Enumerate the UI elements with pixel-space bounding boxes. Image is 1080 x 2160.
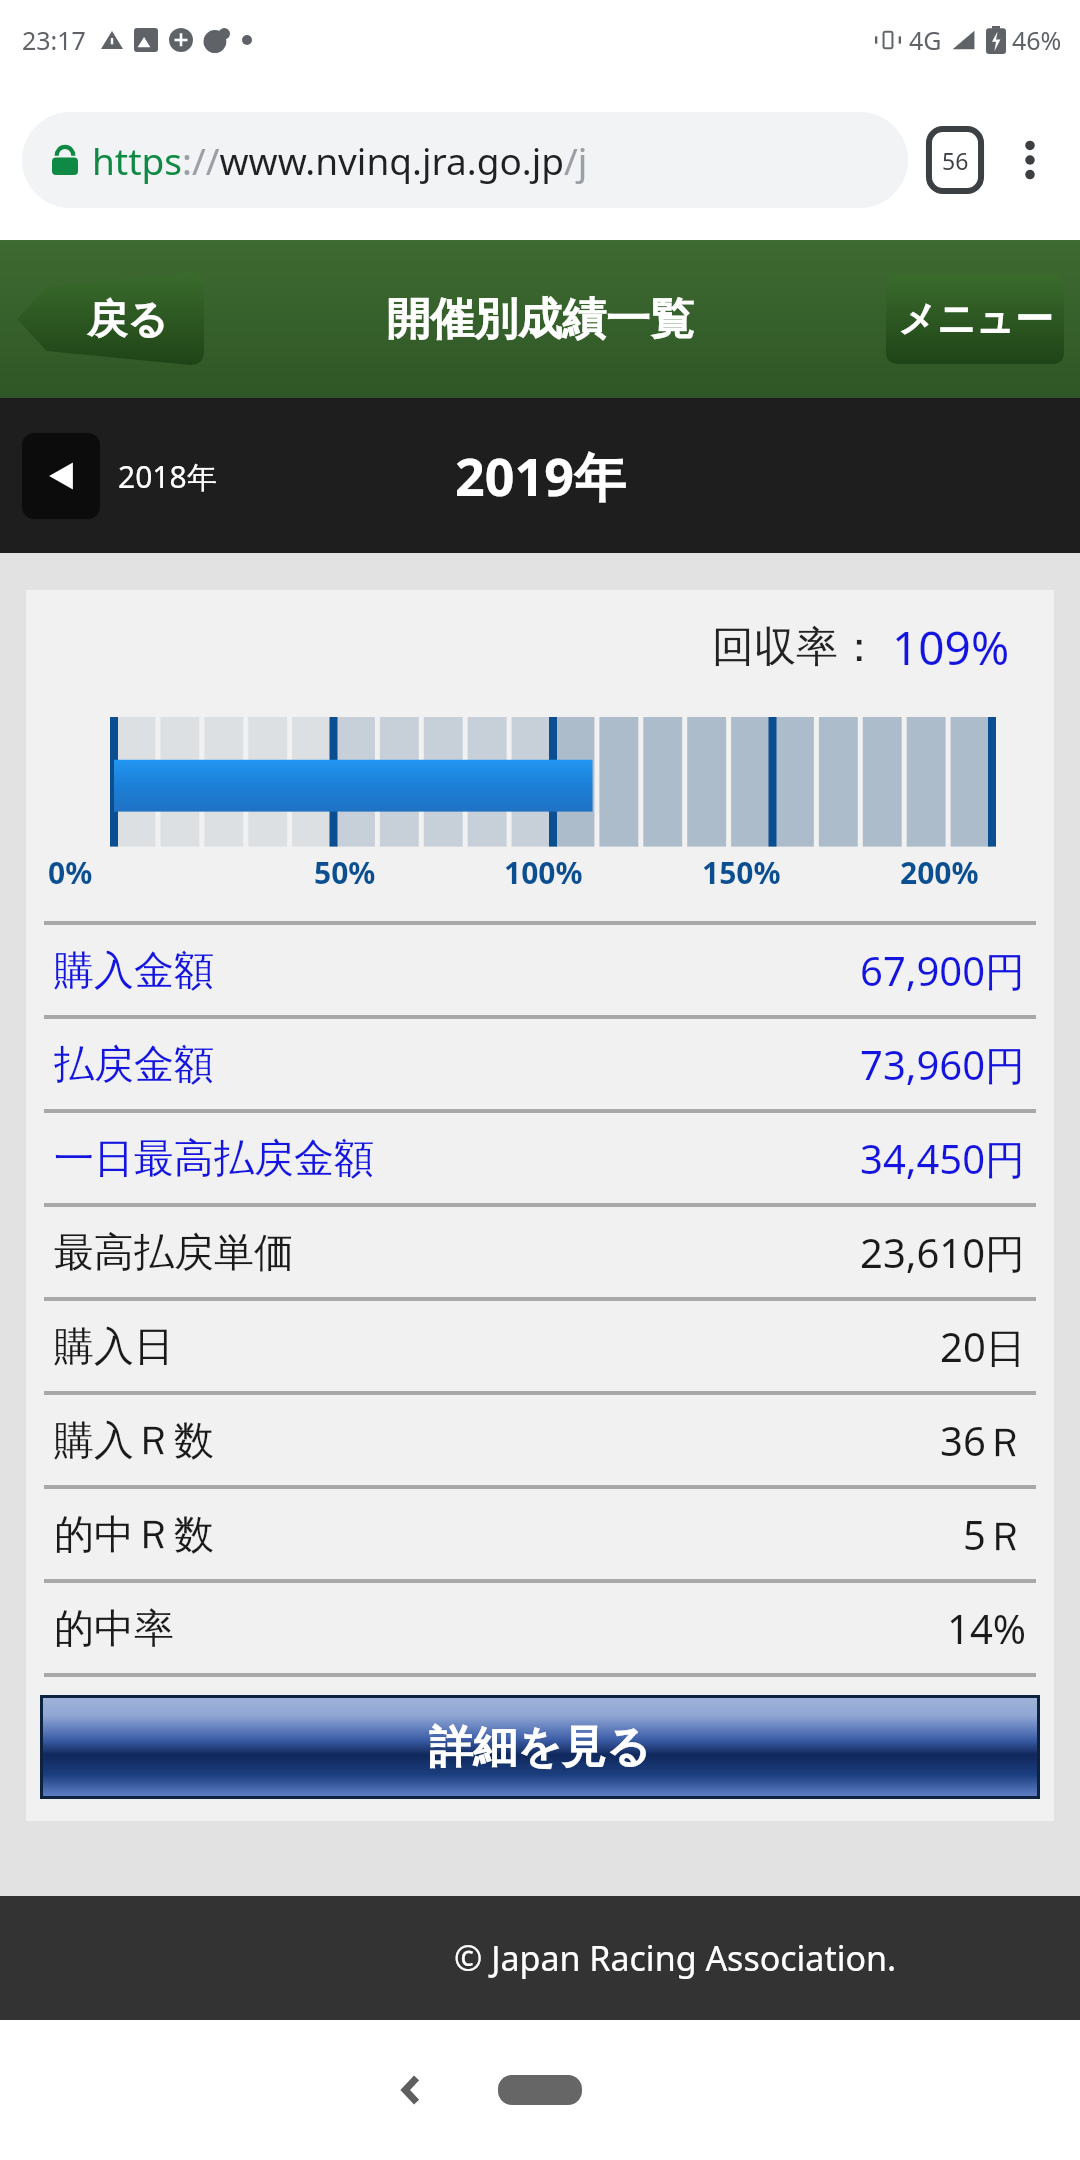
staticText: 払戻金額 [54, 1039, 214, 1089]
button[interactable]: Tabs [924, 129, 986, 191]
staticText: 購入Ｒ数 [54, 1415, 214, 1465]
button[interactable]: 購入Ｒ数 [44, 1395, 1036, 1485]
button[interactable]: メニュー [886, 274, 1064, 364]
button[interactable]: 詳細を見る [43, 1698, 1037, 1796]
staticText: 56 [942, 145, 969, 176]
staticText: 20日 [940, 1319, 1026, 1374]
staticText: 2018年 [118, 456, 217, 497]
staticText: 23,610円 [860, 1225, 1026, 1280]
staticText: 的中Ｒ数 [54, 1509, 214, 1559]
staticText: 詳細を見る [429, 1720, 652, 1775]
button[interactable]: 購入金額 [44, 925, 1036, 1015]
staticText: メニュー [898, 295, 1053, 343]
staticText: 戻る [87, 294, 168, 344]
staticText: 回収率： [712, 621, 880, 674]
staticText: 50% [314, 852, 376, 893]
staticText: 購入日 [54, 1321, 174, 1371]
staticText: 5Ｒ [963, 1507, 1026, 1562]
staticText: 200% [900, 852, 979, 893]
staticText: https://www.nvinq.jra.go.jp/j [92, 135, 588, 185]
button[interactable]: Previous year [22, 433, 100, 519]
staticText: 14% [947, 1601, 1026, 1655]
staticText: 2019年 [455, 440, 626, 511]
staticText: 購入金額 [54, 945, 214, 995]
staticText: 109% [892, 616, 1010, 679]
button[interactable]: 最高払戻単価 [44, 1207, 1036, 1297]
button[interactable]: 戻る [14, 273, 204, 365]
button[interactable]: 一日最高払戻金額 [44, 1113, 1036, 1203]
staticText: 0% [48, 852, 93, 893]
button[interactable]: 払戻金額 [44, 1019, 1036, 1109]
staticText: 最高払戻単価 [54, 1227, 294, 1277]
staticText: 一日最高払戻金額 [54, 1133, 374, 1183]
staticText: 46% [1012, 23, 1062, 57]
button[interactable]: Home [498, 2075, 582, 2105]
staticText: 開催別成績一覧 [386, 292, 694, 347]
button[interactable]: 購入日 [44, 1301, 1036, 1391]
button[interactable]: More options [1002, 132, 1058, 188]
staticText: 34,450円 [860, 1131, 1026, 1186]
staticText: © Japan Racing Association. [454, 1935, 897, 1981]
staticText: 73,960円 [860, 1037, 1026, 1092]
staticText: 100% [504, 852, 583, 893]
button[interactable]: 的中Ｒ数 [44, 1489, 1036, 1579]
staticText: 23:17 [22, 23, 86, 57]
button[interactable]: https://www.nvinq.jra.go.jp/j [22, 112, 908, 208]
staticText: 150% [702, 852, 781, 893]
staticText: 67,900円 [860, 943, 1026, 998]
button[interactable]: 的中率 [44, 1583, 1036, 1673]
staticText: 36Ｒ [940, 1413, 1026, 1468]
button[interactable]: Back [372, 2050, 452, 2130]
staticText: 的中率 [54, 1603, 174, 1653]
staticText: 4G [909, 23, 942, 57]
